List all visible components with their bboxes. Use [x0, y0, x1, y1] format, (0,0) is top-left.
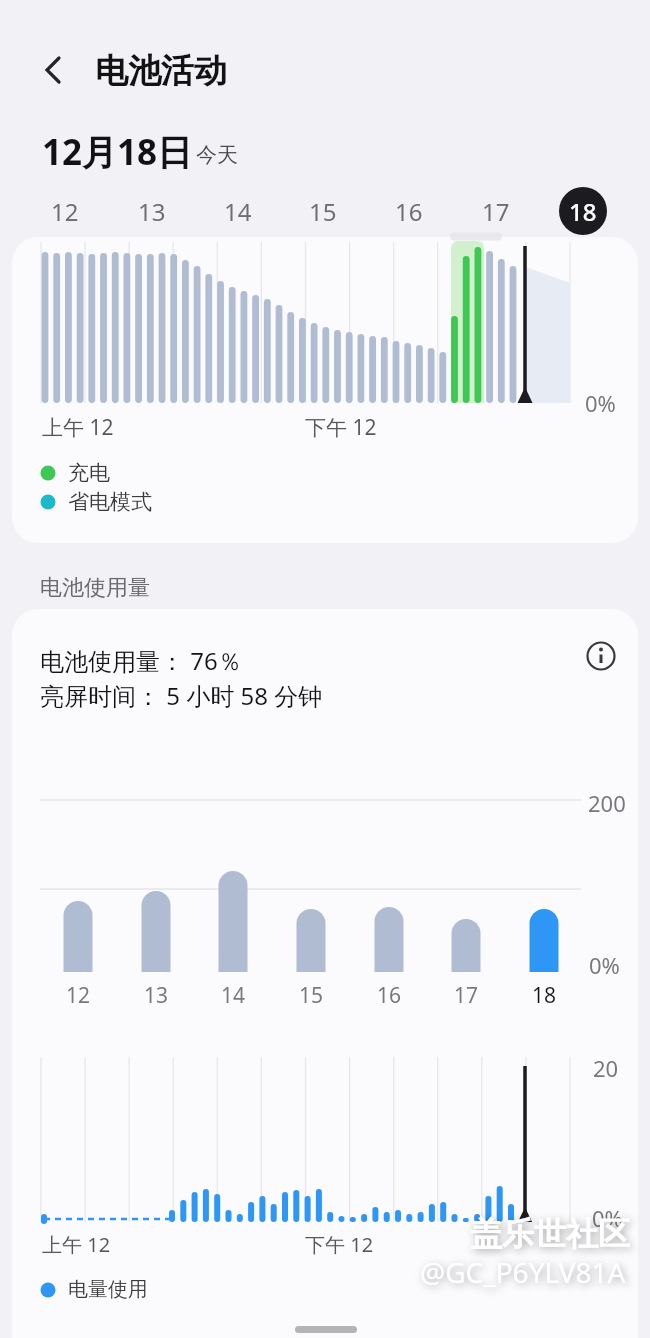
staticText: 16	[395, 195, 423, 228]
staticText: 17	[454, 981, 479, 1009]
staticText: 13	[138, 195, 166, 228]
staticText: 省电模式	[68, 489, 152, 515]
staticText: 电量使用	[68, 1277, 148, 1302]
staticText: 15	[309, 195, 337, 228]
staticText: 14	[221, 981, 246, 1009]
staticText: 0%	[592, 1203, 623, 1233]
button[interactable]: 13	[128, 187, 176, 235]
staticText: 18	[532, 981, 557, 1009]
button[interactable]: 16	[385, 187, 433, 235]
button[interactable]	[30, 45, 78, 93]
staticText: 12	[66, 981, 91, 1009]
staticText: 今天	[196, 142, 238, 168]
staticText: 15	[299, 981, 324, 1009]
staticText: 18	[569, 195, 597, 228]
button[interactable]	[580, 635, 622, 677]
staticText: 12月18日	[42, 128, 193, 176]
staticText: 0%	[589, 950, 620, 980]
staticText: 14	[224, 195, 252, 228]
button[interactable]: 15	[299, 187, 347, 235]
staticText: 上午 12	[42, 413, 114, 442]
staticText: 充电	[68, 460, 110, 486]
staticText: 亮屏时间： 5 小时 58 分钟	[40, 679, 323, 712]
button[interactable]: 18	[559, 187, 607, 235]
button[interactable]: 17	[472, 187, 520, 235]
button[interactable]: 14	[214, 187, 262, 235]
staticText: 电池使用量	[40, 574, 150, 602]
button[interactable]	[12, 609, 638, 729]
staticText: 16	[377, 981, 402, 1009]
staticText: 下午 12	[305, 413, 377, 442]
staticText: 0%	[585, 388, 616, 418]
staticText: 下午 12	[305, 1231, 374, 1258]
staticText: 上午 12	[42, 1231, 111, 1258]
staticText: 12	[51, 195, 79, 228]
staticText: @GC_P6YLV81A	[420, 1253, 626, 1291]
staticText: 电池活动	[95, 50, 227, 92]
staticText: 200	[588, 788, 626, 818]
button[interactable]: 12	[41, 187, 89, 235]
staticText: 13	[144, 981, 169, 1009]
staticText: 电池使用量： 76％	[40, 644, 242, 677]
staticText: 盖乐世社区	[470, 1214, 630, 1254]
staticText: 20	[593, 1053, 619, 1083]
staticText: 17	[482, 195, 510, 228]
